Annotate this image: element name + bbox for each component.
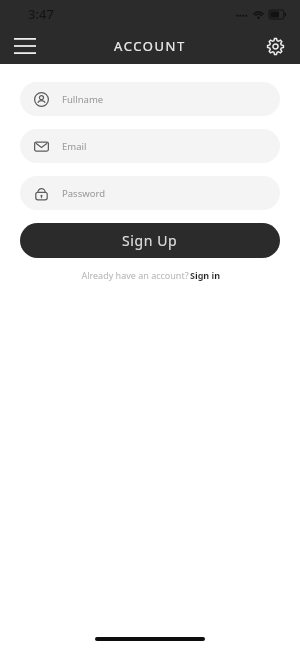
button[interactable]: Settings [260,31,290,61]
button[interactable]: Password [20,176,280,210]
staticText: Sign in [190,269,221,281]
staticText: Email [62,140,87,153]
button[interactable]: Email [20,129,280,163]
staticText: ACCOUNT [114,37,186,55]
staticText: Already have an account? [80,269,190,281]
staticText: Sign Up [122,231,178,250]
staticText: Password [62,187,105,200]
button[interactable]: Sign Up [20,223,280,258]
staticText: 3:47 [28,5,54,23]
button[interactable]: Sign in [190,269,221,281]
button[interactable]: Menu [10,31,40,61]
button[interactable]: Fullname [20,82,280,116]
staticText: Fullname [62,93,104,106]
